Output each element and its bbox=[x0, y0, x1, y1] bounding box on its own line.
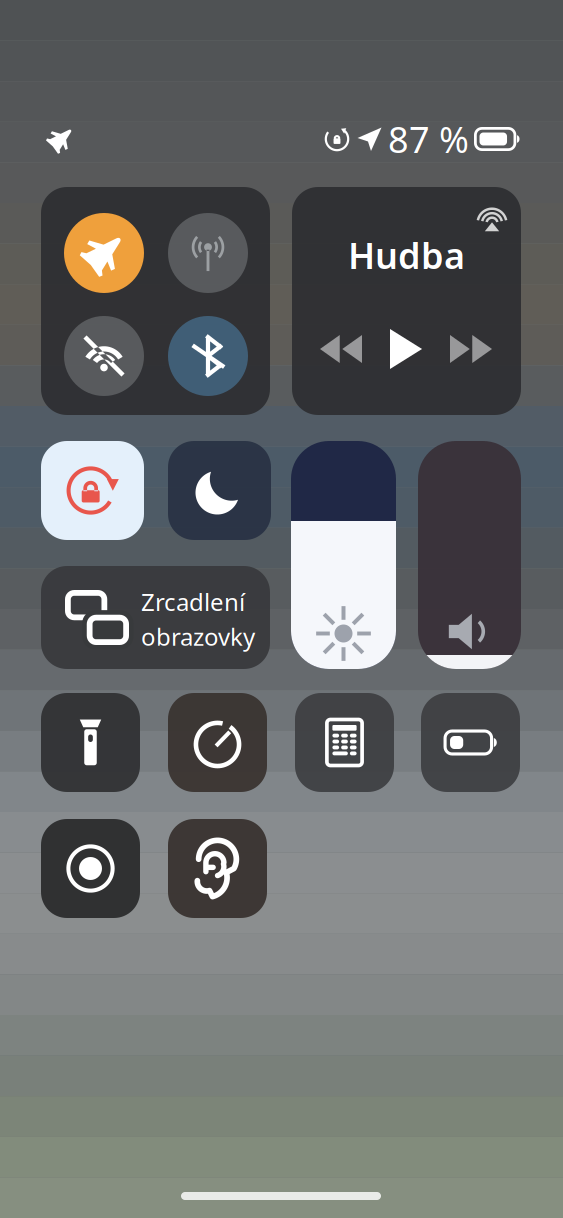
button[interactable]: Wi-Fi bbox=[64, 316, 144, 396]
button[interactable]: AirPlay bbox=[476, 202, 508, 234]
button[interactable]: Bluetooth bbox=[168, 316, 248, 396]
button[interactable]: Low Power Mode bbox=[421, 693, 520, 792]
button[interactable]: Screen Recording bbox=[41, 819, 140, 918]
staticText: Hudba bbox=[348, 231, 465, 279]
staticText: 87 % bbox=[388, 115, 469, 163]
button[interactable]: Rotation Lock bbox=[41, 441, 144, 540]
button[interactable]: Zrcadlení bbox=[41, 566, 270, 669]
button[interactable]: Play bbox=[390, 329, 422, 369]
button[interactable]: Timer bbox=[168, 693, 267, 792]
button[interactable]: Volume bbox=[418, 441, 521, 669]
button[interactable]: Hearing bbox=[168, 819, 267, 918]
button[interactable]: Flashlight bbox=[41, 693, 140, 792]
button[interactable]: Brightness bbox=[291, 441, 396, 669]
staticText: Zrcadlení bbox=[141, 586, 245, 617]
staticText: obrazovky bbox=[141, 620, 255, 652]
button[interactable]: Airplane Mode bbox=[64, 213, 144, 293]
button[interactable]: Calculator bbox=[295, 693, 394, 792]
button[interactable]: Do Not Disturb bbox=[168, 441, 271, 540]
button[interactable]: Previous bbox=[320, 335, 362, 363]
button[interactable]: Next bbox=[450, 335, 492, 363]
button[interactable]: Cellular Data bbox=[168, 213, 248, 293]
